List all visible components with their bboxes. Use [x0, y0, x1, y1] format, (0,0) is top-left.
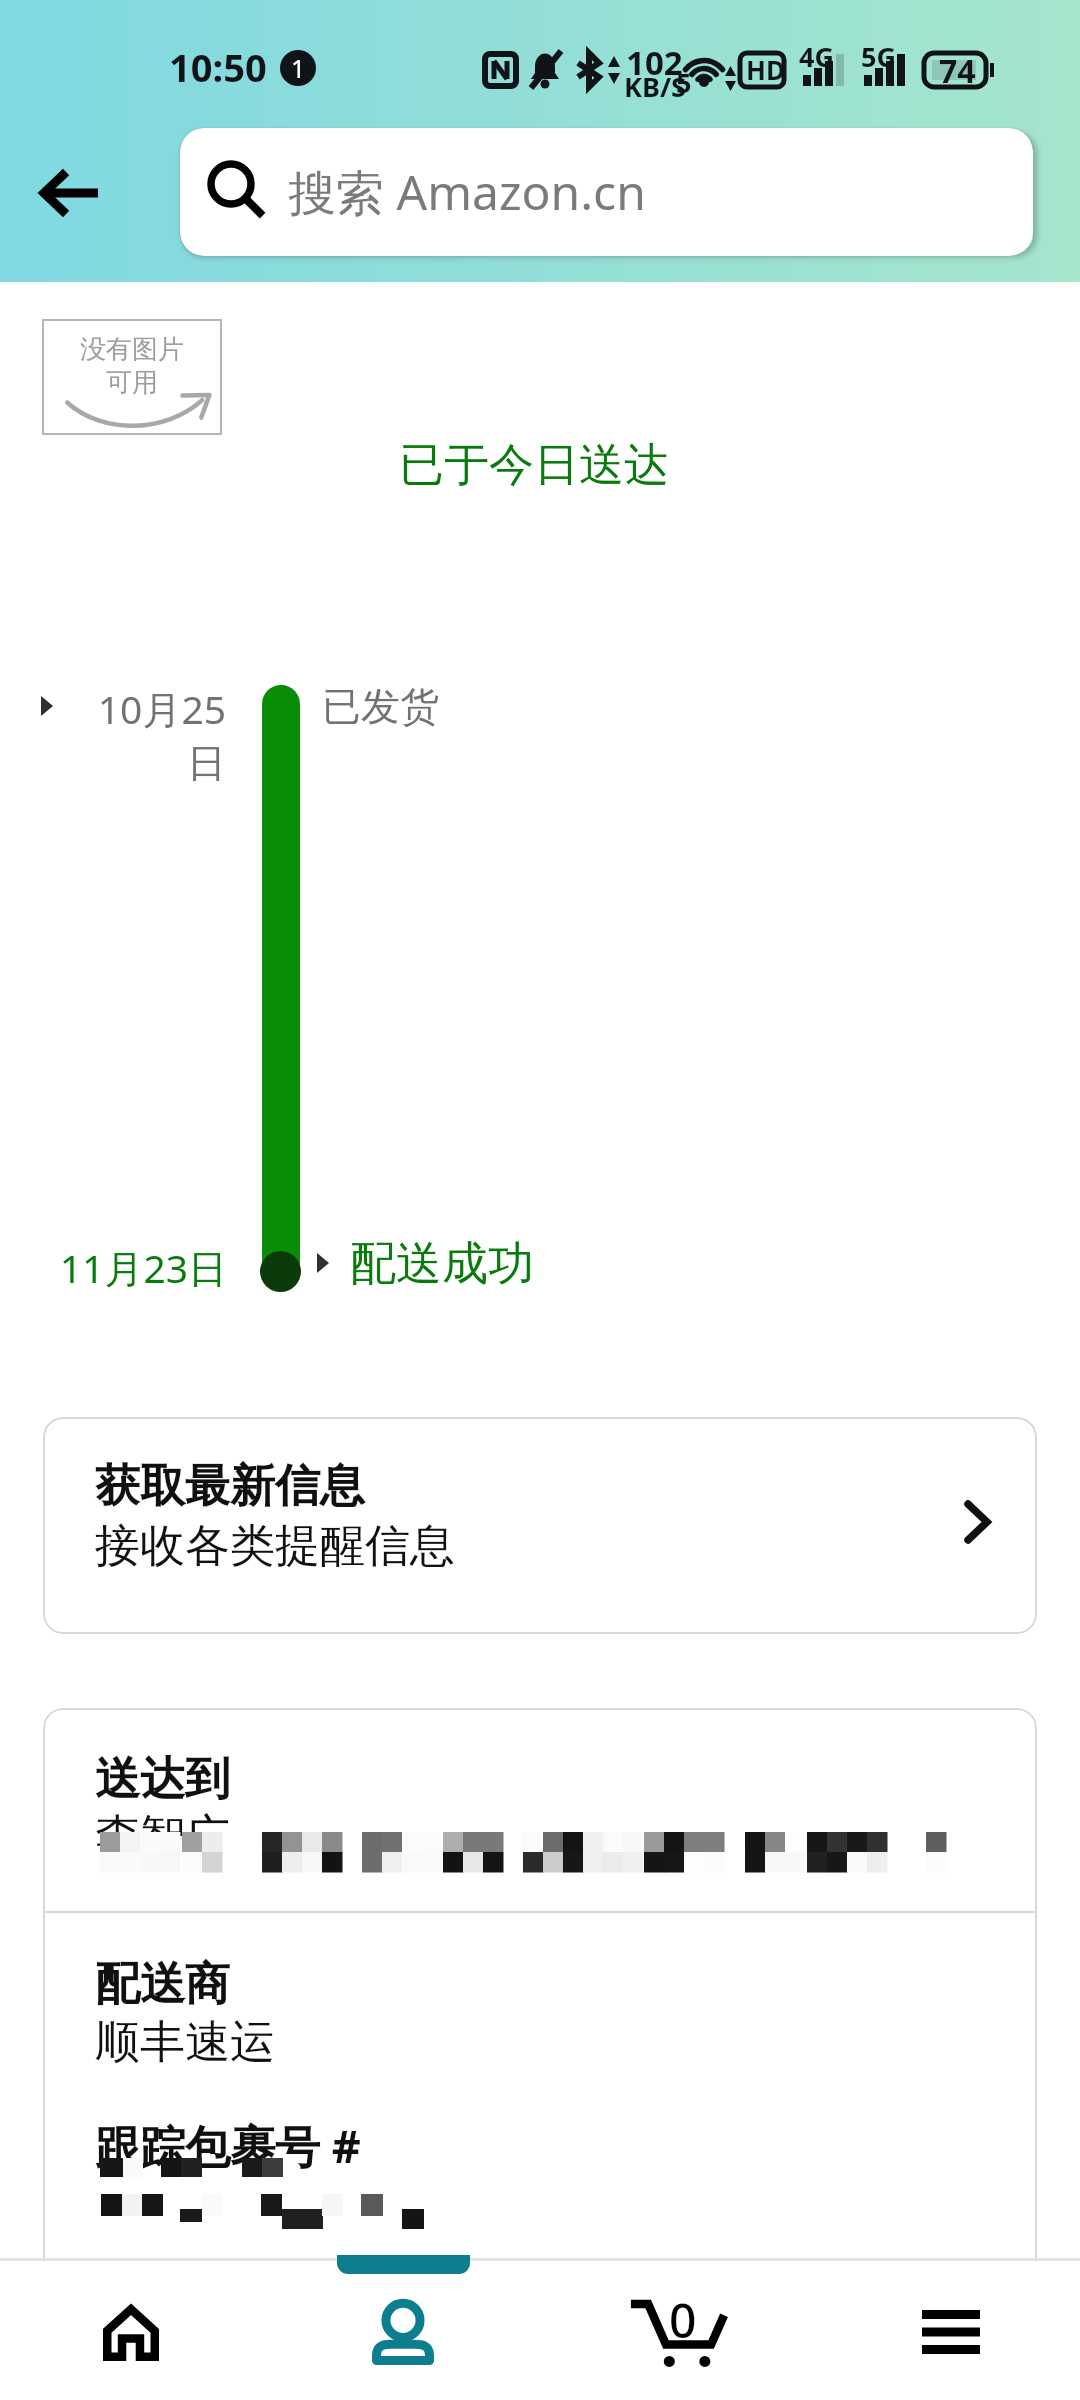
staticText: KB/S — [624, 68, 686, 105]
staticText: 已发货 — [322, 682, 439, 731]
staticText: 0 — [669, 2287, 697, 2352]
staticText: 接收各类提醒信息 — [95, 1518, 455, 1575]
staticText: 顺丰速运 — [95, 2014, 275, 2071]
staticText: 配送成功 — [350, 1235, 534, 1293]
button[interactable]: Cart, 0 items — [540, 2258, 810, 2400]
staticText: 1 — [291, 51, 306, 85]
staticText: 4G — [799, 38, 834, 75]
staticText: 11月23日 — [27, 1241, 227, 1294]
staticText: 5 — [676, 64, 692, 101]
staticText: 配送商 — [95, 1956, 230, 2013]
staticText: 10:50 — [169, 41, 267, 93]
staticText: 已于今日送达 — [0, 437, 1074, 494]
staticText: 跟踪包裹号 # — [95, 2115, 361, 2176]
button[interactable]: Search Amazon.cn — [180, 128, 1033, 256]
staticText: 李智广 — [95, 1808, 230, 1865]
button[interactable]: Home — [0, 2258, 270, 2400]
button[interactable]: 获取最新信息 — [43, 1417, 1037, 1634]
staticText: 可用 — [106, 366, 158, 399]
staticText: 5G — [861, 38, 896, 75]
button[interactable]: Menu — [810, 2258, 1080, 2400]
button[interactable]: Your Account — [270, 2258, 540, 2400]
staticText: HD — [746, 52, 785, 87]
staticText: 74 — [939, 49, 976, 93]
staticText: 送达到 — [95, 1751, 230, 1808]
button[interactable]: Back — [18, 145, 114, 241]
staticText: 102 — [626, 40, 683, 85]
staticText: 获取最新信息 — [95, 1458, 365, 1515]
staticText: 没有图片 — [80, 333, 184, 366]
staticText: 搜索 Amazon.cn — [288, 159, 646, 225]
staticText: 10月25日 — [76, 682, 226, 789]
